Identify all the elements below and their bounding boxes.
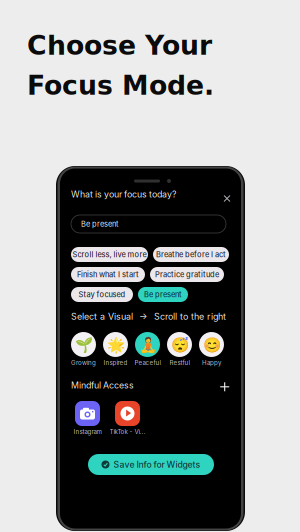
button[interactable]: Stay focused <box>71 287 133 302</box>
button[interactable]: Add app <box>218 380 232 394</box>
staticText: Focus Mode. <box>27 70 214 101</box>
staticText: Inspired <box>103 359 127 366</box>
staticText: Practice gratitude <box>155 270 219 279</box>
staticText: Peaceful <box>134 359 160 366</box>
staticText: TikTok - Vi... <box>109 428 145 435</box>
staticText: Choose Your <box>27 30 212 61</box>
staticText: 🌟 <box>106 336 124 353</box>
staticText: 🌱 <box>74 336 92 353</box>
button[interactable]: Finish what I start <box>71 267 145 282</box>
staticText: Restful <box>169 359 189 366</box>
staticText: Happy <box>202 359 221 366</box>
button[interactable]: Close <box>220 191 234 205</box>
staticText: Save Info for Widgets <box>113 459 200 470</box>
staticText: What is your focus today? <box>71 189 176 200</box>
button[interactable]: Save Info for Widgets <box>88 454 214 475</box>
button[interactable]: Scroll less, live more <box>71 247 148 262</box>
button[interactable]: Instagram <box>75 401 100 435</box>
staticText: Scroll less, live more <box>72 250 146 259</box>
staticText: Breathe before I act <box>156 250 226 259</box>
staticText: Stay focused <box>78 290 125 299</box>
staticText: Be present <box>144 290 182 299</box>
staticText: Be present <box>81 219 118 228</box>
button[interactable]: 🌟 <box>103 332 128 366</box>
staticText: Growing <box>71 359 96 366</box>
button[interactable]: 😴 <box>167 332 192 366</box>
button[interactable]: Be present <box>138 287 188 302</box>
staticText: Instagram <box>73 428 101 435</box>
staticText: 🧘 <box>138 336 156 353</box>
staticText: Select a Visual → Scroll to the right <box>71 311 226 322</box>
button[interactable]: Breathe before I act <box>153 247 229 262</box>
button[interactable]: Be present <box>71 215 226 233</box>
staticText: 😊 <box>202 336 220 353</box>
button[interactable]: 🧘 <box>135 332 160 366</box>
button[interactable]: 😊 <box>199 332 224 366</box>
staticText: Mindful Access <box>71 380 134 391</box>
button[interactable]: Practice gratitude <box>150 267 224 282</box>
button[interactable]: 🌱 <box>71 332 96 366</box>
button[interactable]: TikTok - Vi... <box>115 401 140 435</box>
staticText: Finish what I start <box>77 270 139 279</box>
staticText: 😴 <box>170 336 188 353</box>
